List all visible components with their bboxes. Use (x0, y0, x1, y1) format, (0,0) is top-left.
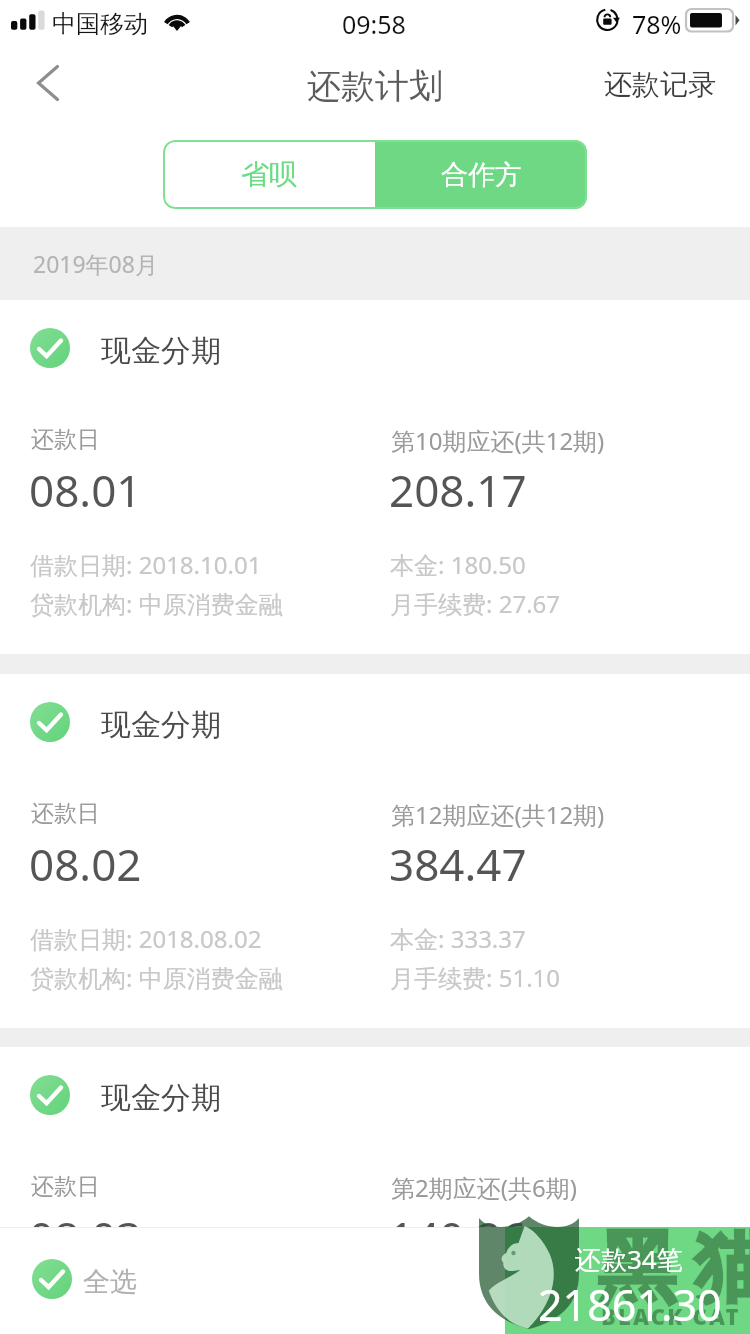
staticText: 09:58 (342, 7, 406, 41)
button[interactable]: 全选 (32, 1259, 137, 1299)
staticText: 黑猫 (588, 1219, 750, 1317)
button[interactable]: 合作方 (375, 140, 587, 209)
staticText: 借款日期: 2018.08.02 (30, 922, 262, 955)
staticText: 合作方 (441, 158, 522, 192)
button[interactable]: 现金分期 (0, 1047, 750, 1334)
staticText: 还款日 (31, 799, 100, 828)
staticText: 借款日期: 2018.10.01 (30, 548, 262, 581)
staticText: 月手续费: 51.10 (390, 961, 561, 994)
staticText: BLACK CAT (601, 1301, 741, 1331)
staticText: 现金分期 (101, 332, 221, 370)
staticText: 本金: 120.00 (390, 1295, 526, 1328)
staticText: 还款计划 (307, 65, 443, 108)
button[interactable]: 黑猫 (505, 1227, 750, 1334)
staticText: 贷款机构: 中原消费金融 (30, 961, 283, 994)
staticText: 第2期应还(共6期) (391, 1171, 577, 1204)
button[interactable]: 省呗 (163, 140, 375, 209)
staticText: 本金: 333.37 (390, 922, 526, 955)
button[interactable]: 现金分期 (0, 300, 750, 654)
staticText: 全选 (83, 1265, 137, 1299)
button[interactable]: 现金分期 (0, 674, 750, 1028)
staticText: 第10期应还(共12期) (391, 424, 605, 457)
staticText: 第12期应还(共12期) (391, 798, 605, 831)
staticText: 384.47 (389, 834, 527, 894)
staticText: 现金分期 (101, 706, 221, 744)
staticText: 省呗 (241, 157, 297, 192)
staticText: 140.26 (389, 1207, 527, 1267)
staticText: 还款34笔 (575, 1241, 683, 1277)
staticText: 月手续费: 27.67 (390, 587, 561, 620)
staticText: 贷款机构: 中原消费金融 (30, 587, 283, 620)
staticText: 2019年08月 (33, 248, 158, 279)
staticText: 08.01 (29, 460, 142, 520)
staticText: 借款日期: 2018.09.03 (30, 1295, 262, 1328)
staticText: 08.02 (29, 834, 142, 894)
button[interactable]: Back (0, 50, 100, 128)
staticText: 78% (632, 7, 682, 41)
staticText: 08.03 (29, 1207, 142, 1267)
staticText: 中国移动 (52, 9, 148, 39)
staticText: 还款日 (31, 1172, 100, 1201)
staticText: 还款日 (31, 425, 100, 454)
button[interactable]: 还款记录 (578, 50, 750, 128)
staticText: 本金: 180.50 (390, 548, 526, 581)
staticText: 21861.30 (538, 1275, 722, 1334)
staticText: 还款记录 (604, 67, 716, 102)
staticText: 现金分期 (101, 1079, 221, 1117)
staticText: 208.17 (389, 460, 527, 520)
